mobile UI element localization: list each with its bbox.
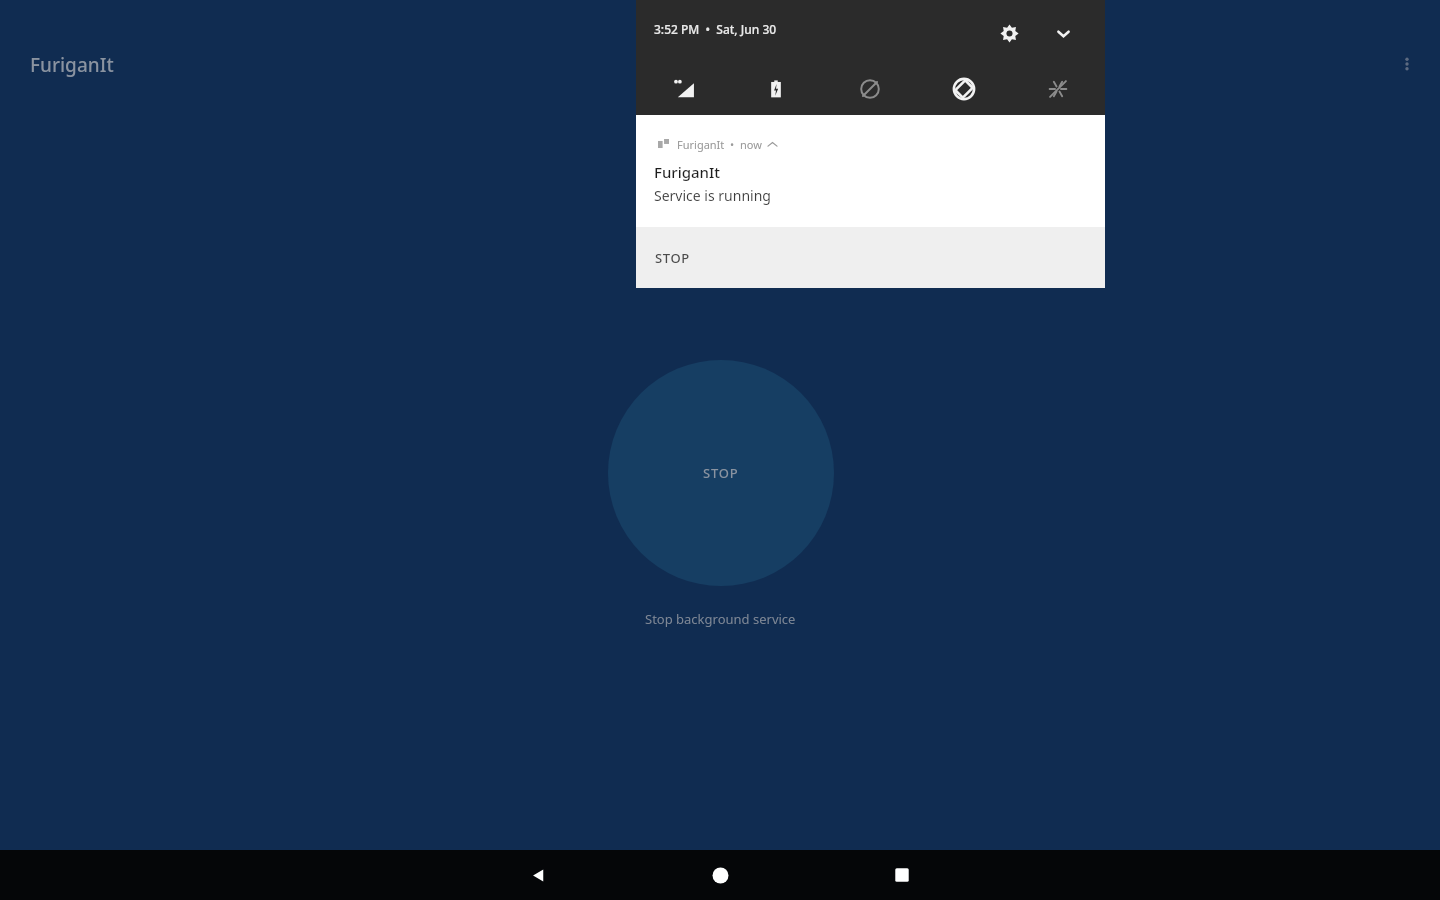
staticText: 3:52 PM • Sat, Jun 30	[654, 21, 777, 37]
button[interactable]: Auto rotate	[917, 66, 1011, 112]
staticText: Service is running	[654, 186, 771, 205]
staticText: STOP	[655, 249, 690, 267]
button[interactable]: Battery	[729, 66, 823, 112]
button[interactable]: Home	[690, 850, 750, 900]
button[interactable]: Do not disturb	[823, 66, 917, 112]
button[interactable]: More options	[1386, 43, 1428, 85]
staticText: Stop background service	[645, 610, 796, 628]
button[interactable]: Flashlight	[1011, 66, 1105, 112]
button[interactable]: STOP	[636, 227, 1105, 288]
button[interactable]: Expand quick settings	[1042, 12, 1084, 54]
button[interactable]: STOP	[608, 360, 834, 586]
staticText: FuriganIt	[654, 162, 721, 182]
button[interactable]: Back	[508, 850, 568, 900]
button[interactable]: Recent apps	[872, 850, 932, 900]
staticText: STOP	[703, 464, 739, 482]
button[interactable]: FuriganIt • now	[636, 115, 1105, 288]
button[interactable]: Settings	[988, 12, 1030, 54]
staticText: FuriganIt • now	[677, 137, 762, 152]
button[interactable]: Mobile data	[636, 66, 729, 112]
staticText: FuriganIt	[30, 52, 114, 78]
